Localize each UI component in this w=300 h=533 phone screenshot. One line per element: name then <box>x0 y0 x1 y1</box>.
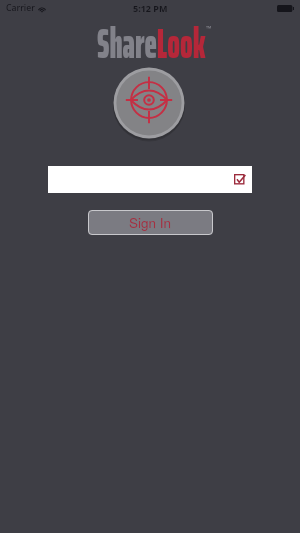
other: Remember me <box>234 174 246 185</box>
staticText: 5:12 PM <box>133 2 168 14</box>
other: ShareLook logo <box>113 67 185 139</box>
staticText: ShareLook <box>97 10 206 76</box>
button[interactable]: Sign In <box>88 210 213 235</box>
staticText: ™ <box>206 24 212 34</box>
staticText: Carrier <box>6 2 35 14</box>
staticText: Sign In <box>129 213 172 232</box>
button[interactable]: Remember me <box>48 166 252 193</box>
